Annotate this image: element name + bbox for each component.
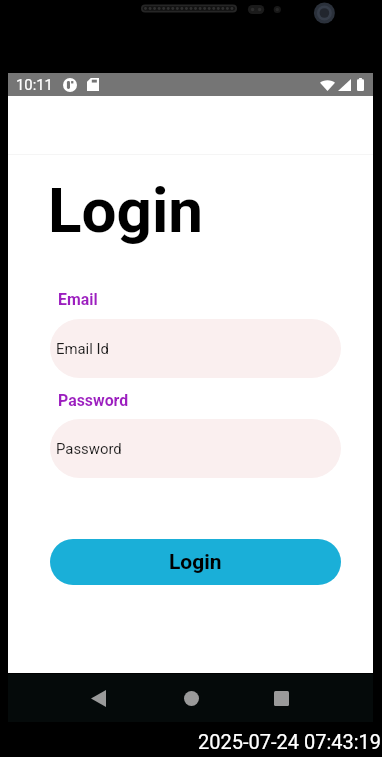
staticText: Email bbox=[58, 290, 98, 309]
staticText: 10:11 bbox=[16, 76, 53, 93]
staticText: Login bbox=[48, 174, 204, 247]
staticText: Email Id bbox=[56, 340, 110, 357]
button[interactable]: Home bbox=[184, 691, 199, 706]
staticText: Password bbox=[58, 391, 129, 410]
button[interactable]: Recents bbox=[274, 691, 289, 706]
button[interactable]: Password bbox=[50, 419, 341, 478]
button[interactable]: Back bbox=[91, 690, 106, 707]
staticText: Login bbox=[169, 550, 222, 575]
staticText: Password bbox=[56, 440, 122, 457]
button[interactable]: Login bbox=[50, 539, 341, 585]
button[interactable]: Email Id bbox=[50, 319, 341, 378]
staticText: 2025-07-24 07:43:19 bbox=[198, 730, 382, 753]
